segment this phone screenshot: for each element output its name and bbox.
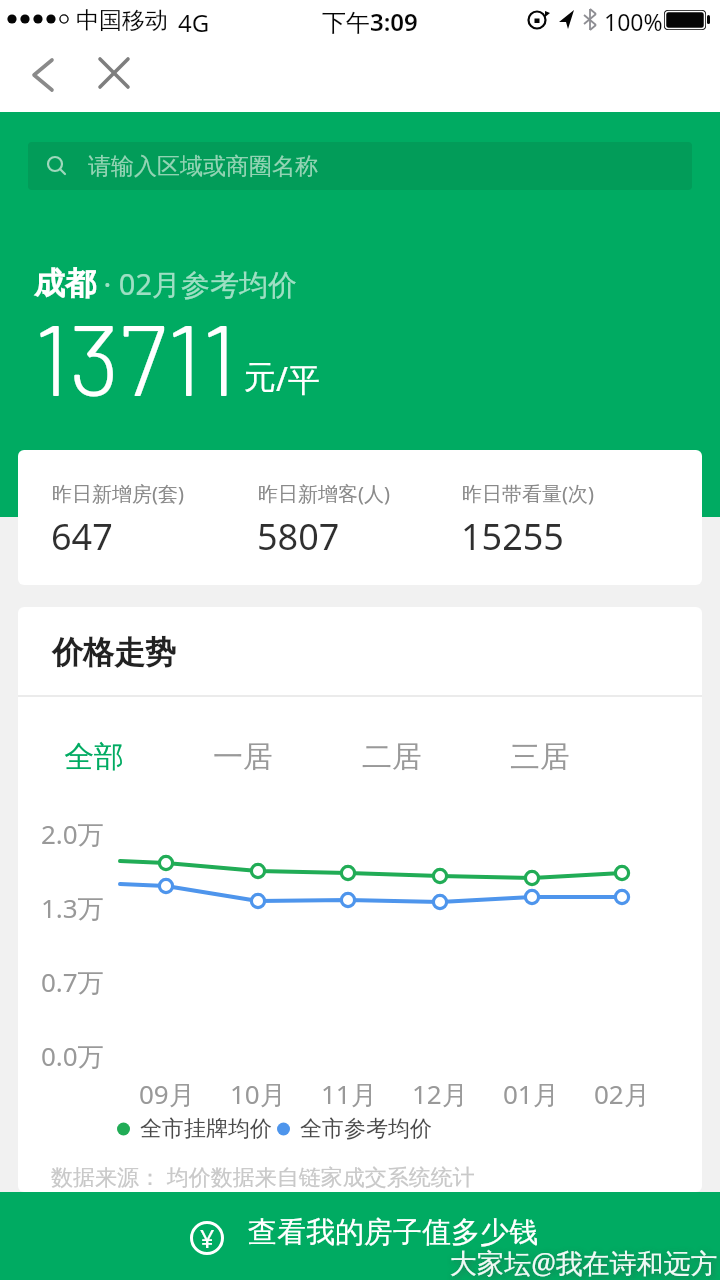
staticText: 昨日新增房(套) (52, 480, 184, 507)
button[interactable]: 请输入区域或商圈名称 (28, 142, 692, 190)
staticText: 2.0万 (41, 816, 104, 852)
staticText: 请输入区域或商圈名称 (88, 152, 318, 181)
staticText: 09月 (139, 1076, 195, 1112)
staticText: 查看我的房子值多少钱 (248, 1214, 538, 1251)
staticText: /平 (276, 357, 320, 401)
staticText: 二居 (362, 738, 422, 776)
staticText: 12月 (412, 1076, 468, 1112)
staticText: 15255 (461, 512, 564, 561)
staticText: 昨日带看量(次) (462, 480, 594, 507)
staticText: 中国移动 (76, 6, 168, 35)
staticText: 下午3:09 (322, 5, 418, 38)
staticText: 全市参考均价 (300, 1115, 432, 1143)
button[interactable] (88, 48, 140, 100)
staticText: 大家坛@我在诗和远方 (450, 1244, 718, 1280)
button[interactable]: 三居 (498, 726, 582, 788)
staticText: 成都 (34, 264, 96, 303)
staticText: 数据来源： 均价数据来自链家成交系统统计 (51, 1161, 475, 1191)
staticText: 昨日新增客(人) (258, 480, 390, 507)
button[interactable]: 昨日新增房(套) (18, 450, 702, 585)
staticText: 10月 (230, 1076, 286, 1112)
staticText: 13711 (34, 296, 237, 416)
staticText: 647 (51, 512, 113, 561)
staticText: 0.0万 (41, 1038, 104, 1074)
button[interactable]: 一居 (201, 726, 285, 788)
staticText: 一居 (213, 738, 273, 776)
button[interactable]: ¥ (0, 1192, 720, 1280)
staticText: 全市挂牌均价 (140, 1115, 272, 1143)
staticText: 01月 (503, 1076, 559, 1112)
staticText: 100% (604, 6, 663, 37)
staticText: 4G (178, 6, 210, 39)
staticText: 全部 (64, 738, 124, 776)
button[interactable]: 二居 (350, 726, 434, 788)
staticText: 价格走势 (52, 633, 176, 672)
staticText: 元 (244, 357, 276, 397)
staticText: 三居 (510, 738, 570, 776)
staticText: 0.7万 (41, 964, 104, 1000)
staticText: 02月 (594, 1076, 650, 1112)
staticText: ¥ (200, 1221, 215, 1255)
staticText: 1.3万 (41, 890, 104, 926)
staticText: · 02月参考均价 (96, 264, 298, 304)
staticText: 11月 (321, 1076, 377, 1112)
button[interactable]: 全部 (52, 726, 136, 788)
staticText: 5807 (257, 512, 340, 561)
button[interactable] (18, 48, 70, 100)
